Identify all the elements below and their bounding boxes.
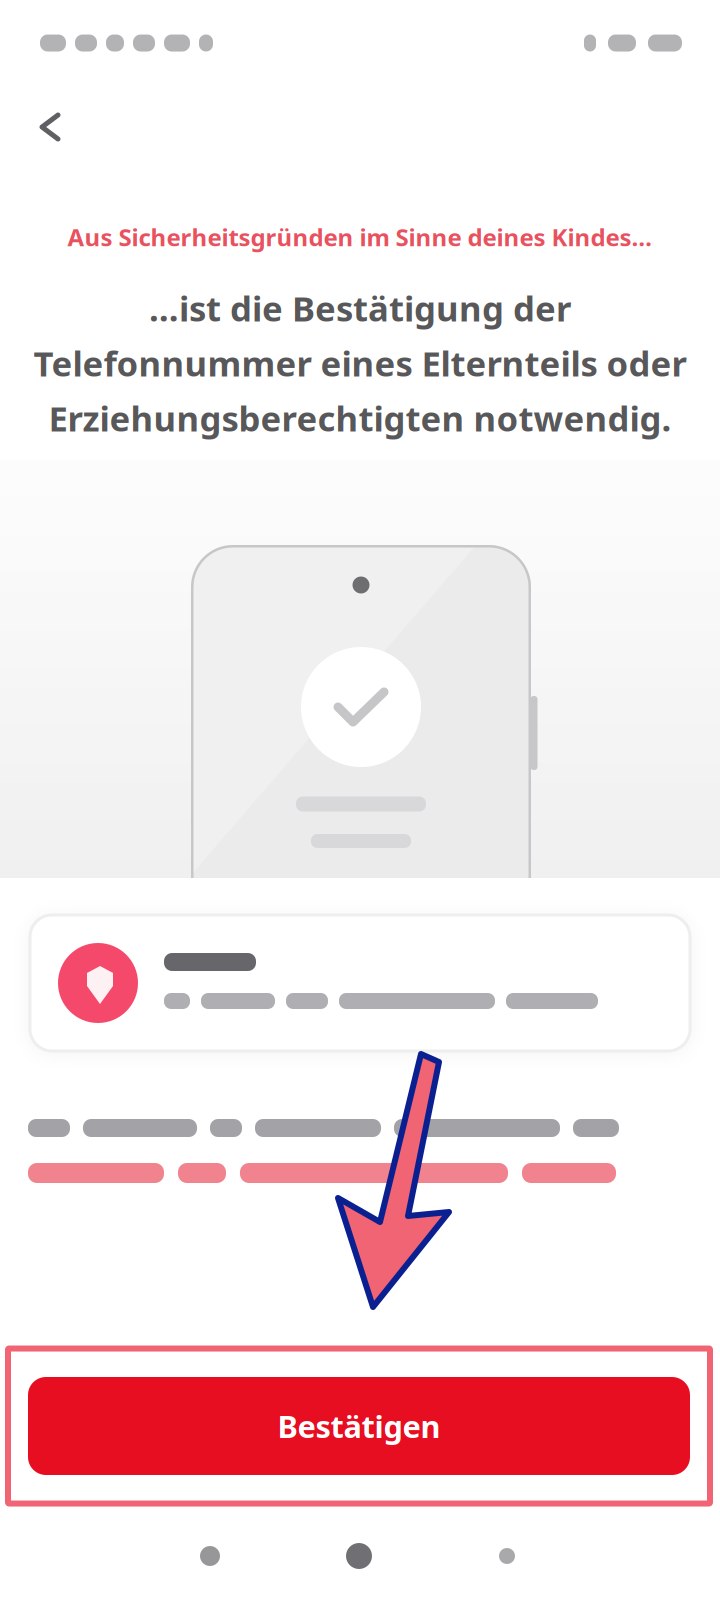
staticText: Telefonnummer eines Elternteils oder [33,340,686,386]
button[interactable]: Home [311,1511,407,1600]
staticText: …ist die Bestätigung der [149,285,571,331]
staticText: Erziehungsberechtigten notwendig. [48,395,671,441]
button[interactable]: Recent apps [459,1511,555,1600]
button[interactable]: Back [162,1511,258,1600]
staticText: Aus Sicherheitsgründen im Sinne deines K… [67,221,652,253]
staticText: Bestätigen [277,1406,440,1446]
button[interactable]: Back [11,88,89,166]
button[interactable]: Bestätigen [8,1348,710,1503]
